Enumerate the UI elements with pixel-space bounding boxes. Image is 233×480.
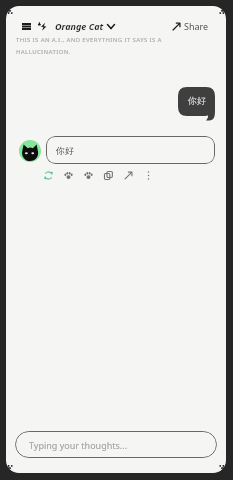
button[interactable]: Like [58,168,78,182]
button[interactable]: Typing your thoughts... [15,431,217,458]
button[interactable]: Dislike [78,168,98,182]
button[interactable]: Orange Cat [38,19,115,33]
staticText: Orange Cat [55,20,104,32]
button[interactable]: 你好 [46,136,215,164]
button[interactable]: More options [138,168,158,182]
button[interactable]: Copy [98,168,118,182]
button[interactable]: Menu [19,19,33,33]
button[interactable]: 你好 [178,87,215,120]
button[interactable]: Share message [118,168,138,182]
staticText: Share [184,20,209,32]
staticText: Typing your thoughts... [29,439,128,451]
staticText: THIS IS AN A.I., AND EVERYTHING IT SAYS … [16,36,168,55]
staticText: 你好 [188,95,206,106]
button[interactable]: Share [172,19,209,33]
button[interactable]: Orange Cat avatar [19,140,41,162]
button[interactable]: Regenerate [38,168,58,182]
staticText: 你好 [56,145,74,156]
